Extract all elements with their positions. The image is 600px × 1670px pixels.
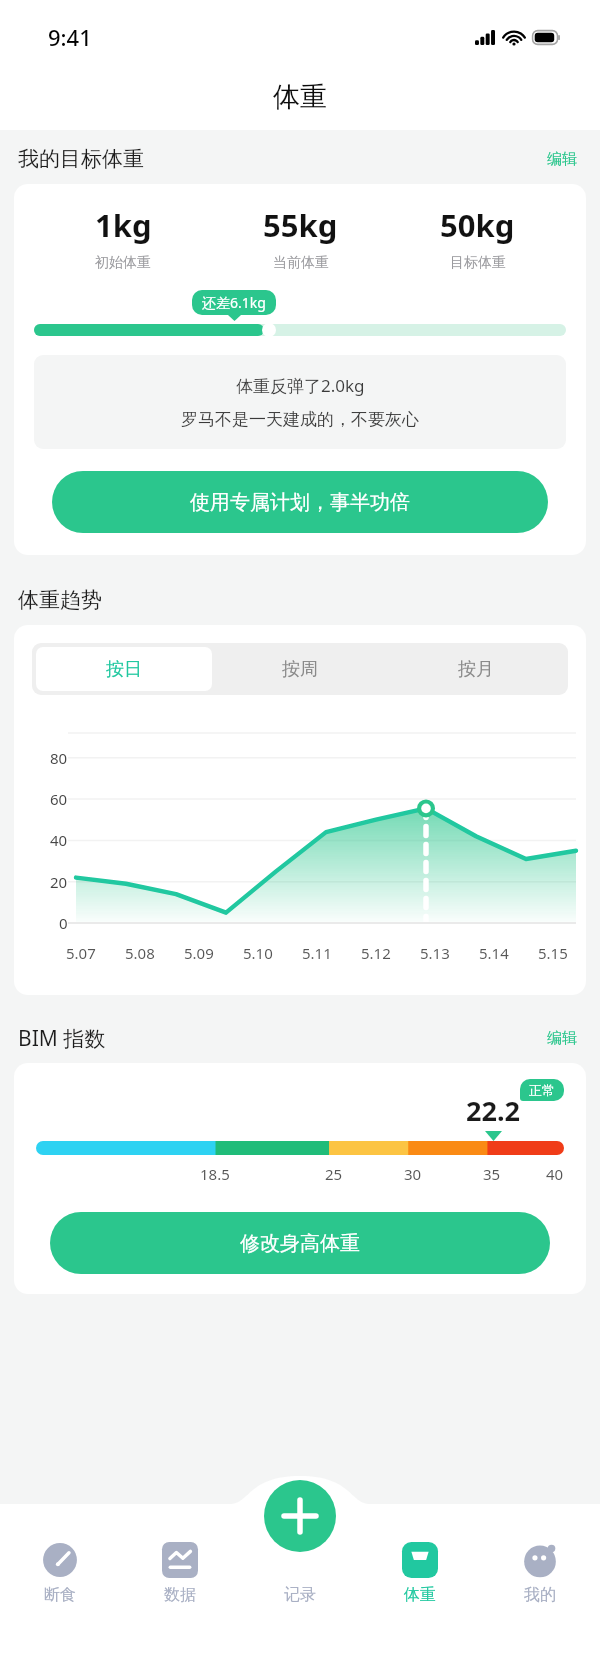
staticText: 40 bbox=[546, 1164, 564, 1184]
staticText: 5.12 bbox=[361, 943, 391, 963]
button[interactable]: 编辑 bbox=[542, 1024, 582, 1053]
staticText: 20 bbox=[50, 872, 68, 892]
staticText: 5.08 bbox=[125, 943, 155, 963]
staticText: 体重反弹了2.0kg bbox=[236, 374, 365, 397]
button[interactable]: 我的 bbox=[480, 1538, 600, 1614]
staticText: 5.10 bbox=[243, 943, 273, 963]
staticText: 40 bbox=[50, 830, 68, 850]
staticText: 5.07 bbox=[66, 943, 96, 963]
button[interactable]: 记录，添加 bbox=[264, 1480, 336, 1552]
button[interactable]: 数据 bbox=[120, 1538, 240, 1614]
staticText: 0 bbox=[59, 913, 68, 933]
staticText: 还差6.1kg bbox=[202, 293, 266, 312]
staticText: 我的目标体重 bbox=[18, 146, 144, 172]
staticText: 18.5 bbox=[200, 1164, 230, 1184]
button[interactable]: 体重 bbox=[360, 1538, 480, 1614]
staticText: 罗马不是一天建成的，不要灰心 bbox=[181, 409, 419, 430]
staticText: 5.14 bbox=[479, 943, 509, 963]
staticText: 按日 bbox=[106, 658, 142, 681]
staticText: 记录 bbox=[284, 1585, 316, 1605]
staticText: 编辑 bbox=[547, 1029, 577, 1048]
staticText: 9:41 bbox=[48, 22, 92, 52]
staticText: 体重 bbox=[273, 80, 327, 114]
button[interactable]: 按日 bbox=[36, 647, 212, 691]
staticText: 80 bbox=[50, 748, 68, 768]
staticText: 5.09 bbox=[184, 943, 214, 963]
staticText: 5.13 bbox=[420, 943, 450, 963]
staticText: 体重 bbox=[404, 1585, 436, 1605]
staticText: 60 bbox=[50, 789, 68, 809]
staticText: 5.11 bbox=[302, 943, 332, 963]
staticText: 目标体重 bbox=[450, 254, 506, 272]
staticText: 按周 bbox=[282, 658, 318, 681]
staticText: 22.2 bbox=[466, 1092, 520, 1129]
staticText: 当前体重 bbox=[273, 254, 329, 272]
button[interactable]: 使用专属计划，事半功倍 bbox=[52, 471, 548, 533]
button[interactable]: 编辑 bbox=[542, 145, 582, 174]
staticText: 35 bbox=[483, 1164, 501, 1184]
staticText: 按月 bbox=[458, 658, 494, 681]
button[interactable]: 记录 bbox=[240, 1538, 360, 1614]
staticText: 体重趋势 bbox=[18, 587, 102, 613]
staticText: 25 bbox=[325, 1164, 343, 1184]
button[interactable]: 按周 bbox=[212, 647, 388, 691]
staticText: 修改身高体重 bbox=[240, 1231, 360, 1256]
staticText: 我的 bbox=[524, 1585, 556, 1605]
button[interactable]: 断食 bbox=[0, 1538, 120, 1614]
staticText: 编辑 bbox=[547, 150, 577, 169]
staticText: 初始体重 bbox=[95, 254, 151, 272]
button[interactable]: 按月 bbox=[388, 647, 564, 691]
staticText: 使用专属计划，事半功倍 bbox=[190, 490, 410, 515]
staticText: 数据 bbox=[164, 1585, 196, 1605]
staticText: 50kg bbox=[440, 204, 515, 246]
staticText: 断食 bbox=[44, 1585, 76, 1605]
staticText: 1kg bbox=[95, 204, 152, 246]
staticText: 55kg bbox=[263, 204, 338, 246]
button[interactable]: 修改身高体重 bbox=[50, 1212, 550, 1274]
staticText: 正常 bbox=[529, 1082, 555, 1098]
staticText: 30 bbox=[404, 1164, 422, 1184]
staticText: BIM 指数 bbox=[18, 1024, 106, 1053]
staticText: 5.15 bbox=[538, 943, 568, 963]
